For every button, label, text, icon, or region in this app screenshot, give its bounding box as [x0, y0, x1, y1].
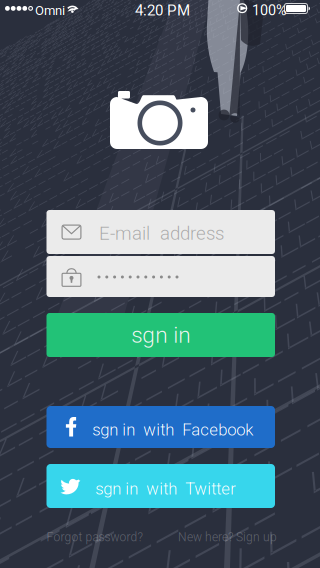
button[interactable]: Forgot password?	[46, 530, 142, 544]
button[interactable]: sgn in	[46, 313, 275, 357]
staticText: E-mail address	[99, 222, 224, 244]
staticText: sgn in with Facebook	[92, 420, 253, 439]
staticText: 100%	[252, 2, 287, 19]
button[interactable]: New here? Sign up	[178, 530, 277, 544]
staticText: Omni	[35, 3, 65, 18]
staticText: Forgot password?	[46, 530, 142, 544]
staticText: sgn in	[131, 322, 190, 348]
staticText: sgn in with Twitter	[95, 479, 236, 498]
button[interactable]: sgn in with Facebook	[46, 406, 275, 448]
button[interactable]: sgn in with Twitter	[46, 464, 275, 508]
staticText: 4:20 PM	[135, 1, 190, 19]
staticText: New here? Sign up	[178, 530, 277, 544]
